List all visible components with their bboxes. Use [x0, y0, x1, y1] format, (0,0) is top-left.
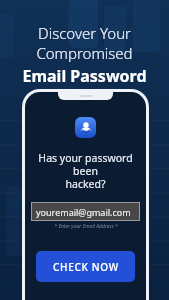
other: App icon [75, 117, 96, 138]
staticText: Email Password [22, 65, 147, 87]
button[interactable]: CHECK NOW [36, 251, 135, 282]
staticText: Compromised [36, 43, 133, 63]
staticText: CHECK NOW [53, 260, 119, 274]
staticText: Has your password been hacked? [25, 151, 146, 191]
staticText: youremail@gmail.com [36, 206, 131, 218]
staticText: * Enter your Email Address * [54, 223, 118, 230]
staticText: Discover Your [38, 23, 131, 43]
button[interactable]: youremail@gmail.com [31, 202, 140, 221]
